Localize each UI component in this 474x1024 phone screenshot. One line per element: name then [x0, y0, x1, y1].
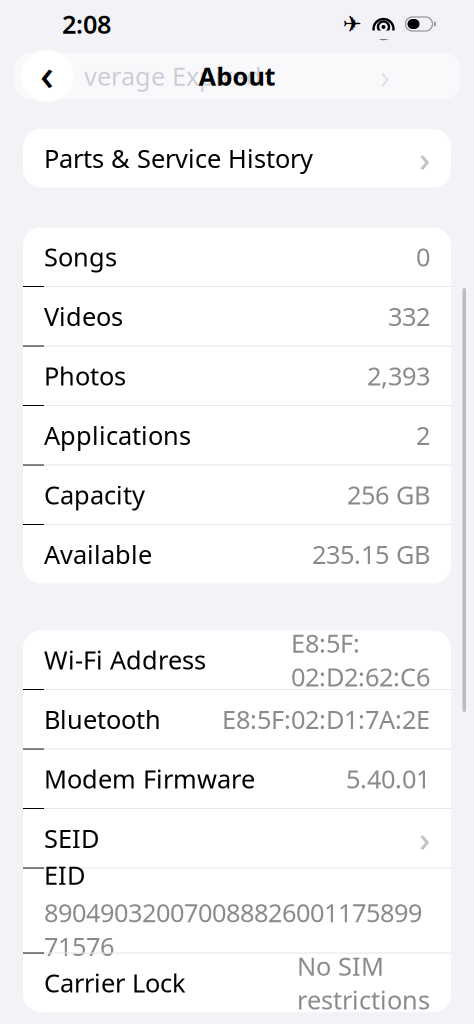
- staticText: ›: [419, 815, 430, 861]
- staticText: verage Expired: [84, 59, 262, 93]
- staticText: Available: [44, 537, 152, 571]
- staticText: Parts & Service History: [44, 141, 313, 175]
- staticText: ›: [419, 135, 430, 181]
- staticText: Carrier Lock: [44, 966, 186, 999]
- staticText: E8:5F:02:D1:7A:2E: [222, 702, 430, 736]
- staticText: Songs: [44, 240, 117, 273]
- staticText: Capacity: [44, 478, 145, 511]
- staticText: 89049032007008882600117589971576: [44, 896, 422, 963]
- button[interactable]: EID: [23, 868, 451, 952]
- button[interactable]: Carrier Lock: [23, 953, 451, 1012]
- button[interactable]: Parts & Service History: [23, 129, 451, 187]
- button[interactable]: Modem Firmware: [23, 749, 451, 808]
- button[interactable]: Photos: [23, 346, 451, 405]
- button[interactable]: Videos: [23, 287, 451, 345]
- staticText: 332: [388, 299, 430, 333]
- staticText: 0: [416, 240, 430, 273]
- button[interactable]: Available: [23, 525, 451, 583]
- staticText: 2:08: [62, 7, 111, 41]
- button[interactable]: Bluetooth: [23, 690, 451, 748]
- staticText: Photos: [44, 359, 126, 392]
- staticText: ‹: [40, 46, 54, 102]
- staticText: EID: [44, 858, 85, 892]
- staticText: E8:5F:02:D2:62:C6: [291, 626, 430, 693]
- staticText: Videos: [44, 299, 123, 333]
- staticText: ›: [380, 55, 390, 97]
- staticText: 2: [416, 418, 430, 452]
- staticText: About: [198, 59, 275, 93]
- button[interactable]: SEID: [23, 809, 451, 867]
- staticText: Bluetooth: [44, 702, 161, 736]
- button[interactable]: Songs: [23, 227, 451, 286]
- staticText: No SIM restrictions: [297, 949, 430, 1016]
- staticText: 5.40.01: [346, 762, 430, 795]
- button[interactable]: Wi-Fi Address: [23, 630, 451, 689]
- staticText: SEID: [44, 821, 99, 855]
- button[interactable]: Back: [21, 50, 73, 102]
- button[interactable]: Capacity: [23, 465, 451, 524]
- staticText: 2,393: [367, 359, 430, 392]
- staticText: Modem Firmware: [44, 762, 255, 795]
- staticText: 256 GB: [347, 478, 430, 511]
- staticText: Wi-Fi Address: [44, 643, 206, 676]
- button[interactable]: Applications: [23, 406, 451, 464]
- staticText: 235.15 GB: [312, 537, 430, 571]
- staticText: Applications: [44, 418, 191, 452]
- staticText: ✈: [342, 11, 361, 37]
